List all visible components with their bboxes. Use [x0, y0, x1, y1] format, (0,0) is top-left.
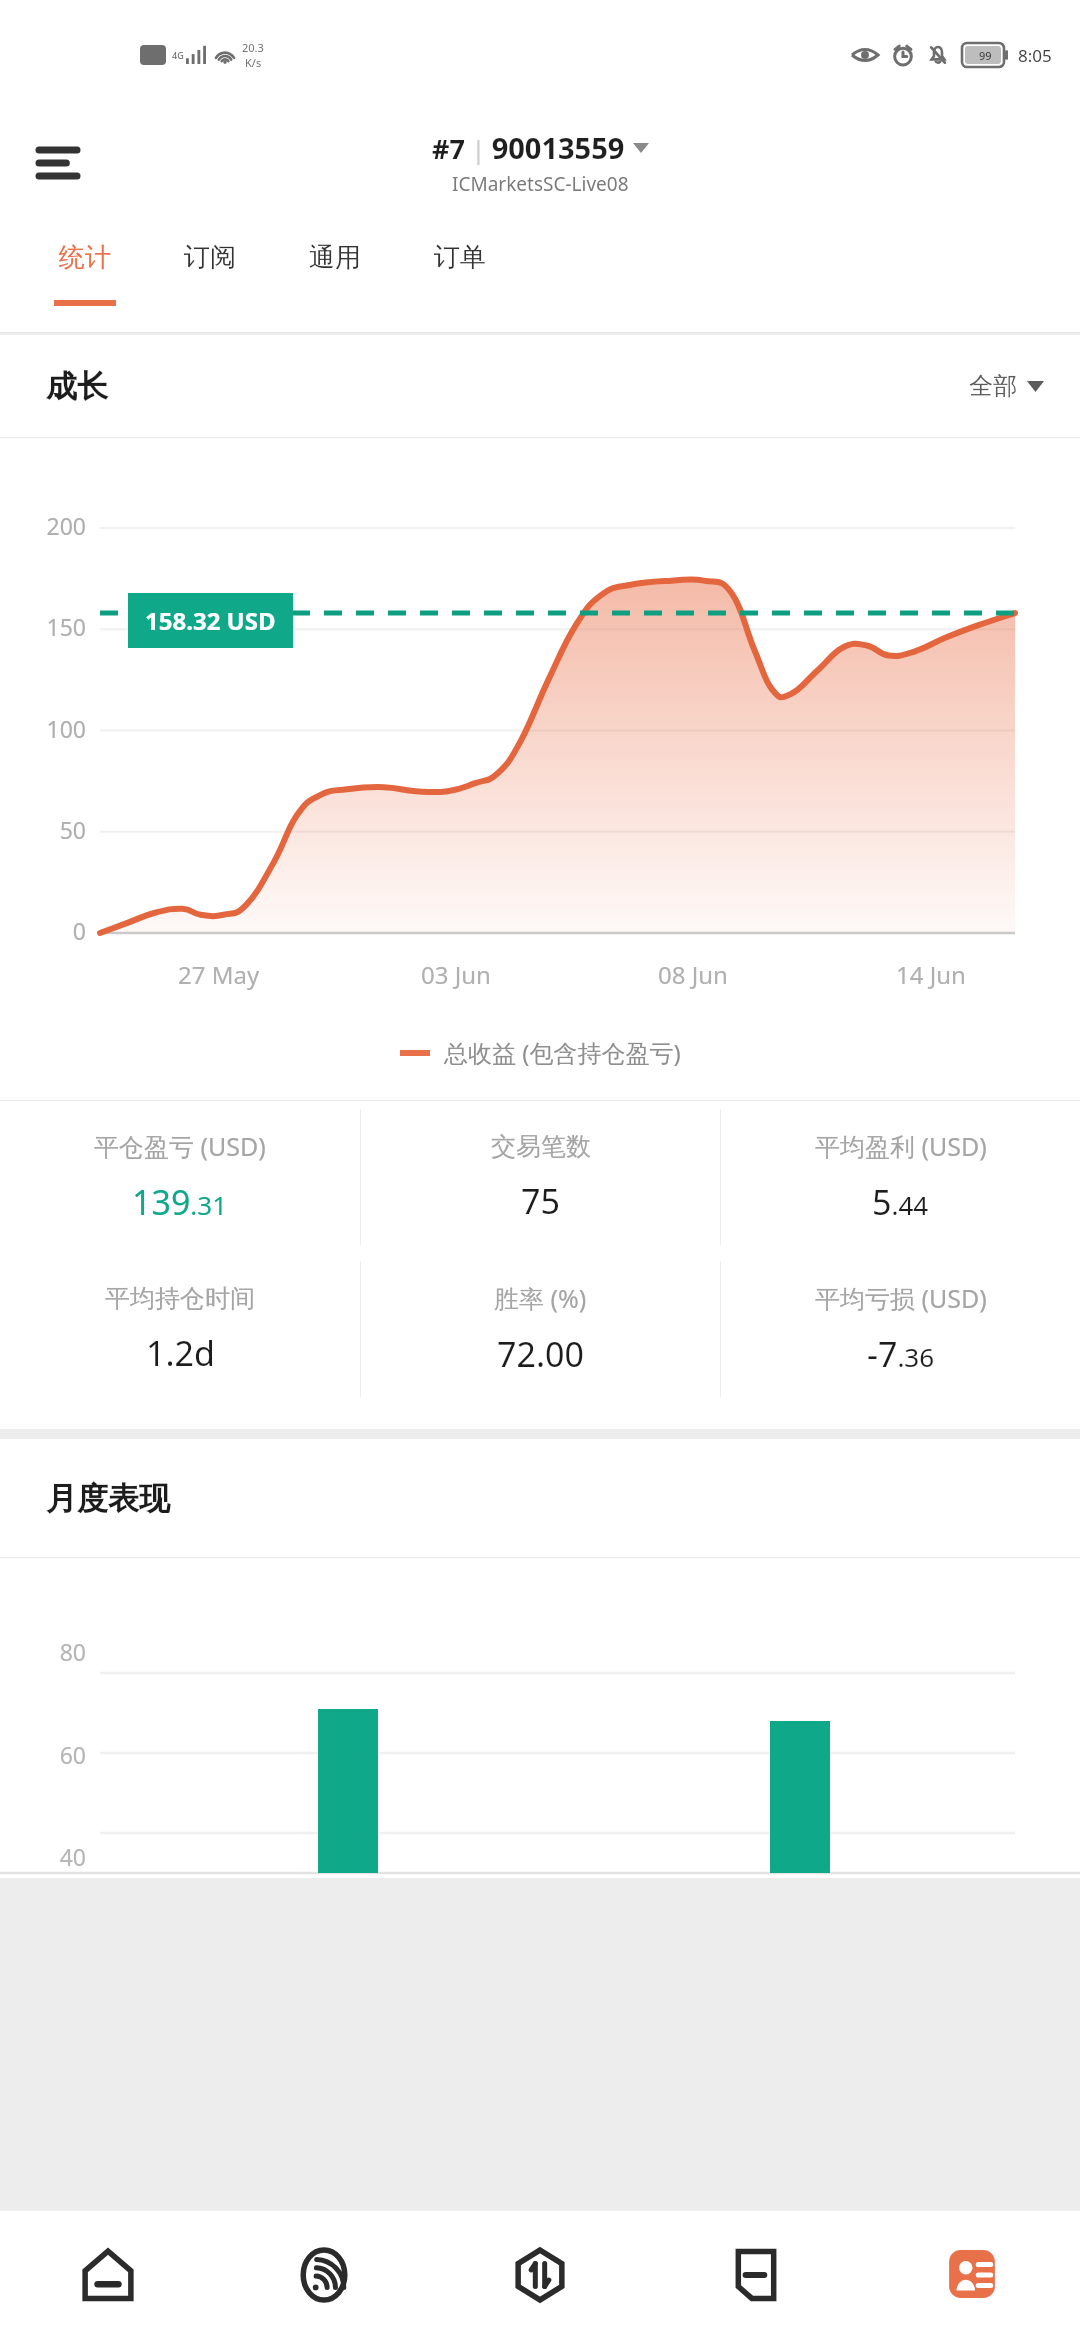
staticText: 158.32 USD: [145, 604, 276, 637]
staticText: 胜率 (%): [494, 1281, 587, 1315]
button[interactable]: 平仓盈亏 (USD): [0, 1101, 360, 1253]
staticText: 0: [0, 915, 86, 946]
staticText: 27 May: [178, 958, 260, 991]
staticText: 通用: [309, 241, 361, 274]
staticText: 全部: [969, 371, 1017, 401]
button[interactable]: Profile: [864, 2210, 1080, 2340]
staticText: 订阅: [184, 241, 236, 274]
staticText: -7.36: [867, 1331, 935, 1377]
staticText: 平均亏损 (USD): [815, 1281, 987, 1315]
staticText: 平均盈利 (USD): [815, 1129, 987, 1163]
button[interactable]: 订单: [397, 215, 522, 333]
staticText: 150: [0, 611, 86, 642]
button[interactable]: Menu: [30, 135, 86, 191]
staticText: K/s: [245, 55, 262, 70]
staticText: 交易笔数: [491, 1131, 591, 1162]
staticText: 1.2d: [146, 1330, 215, 1376]
button[interactable]: 平均持仓时间: [0, 1253, 360, 1405]
staticText: 75: [521, 1178, 560, 1224]
staticText: 成长: [46, 367, 108, 406]
button[interactable]: #7 | 90013559: [432, 128, 649, 197]
button[interactable]: Trade: [432, 2210, 648, 2340]
staticText: 月度表现: [46, 1479, 170, 1518]
staticText: 订单: [434, 241, 486, 274]
staticText: 20.3: [242, 40, 264, 55]
button[interactable]: 平均亏损 (USD): [721, 1253, 1080, 1405]
staticText: 72.00: [497, 1331, 584, 1377]
staticText: 50: [0, 814, 86, 845]
staticText: 139.31: [132, 1179, 228, 1225]
staticText: 统计: [59, 241, 111, 274]
staticText: 03 Jun: [421, 958, 491, 991]
staticText: 99: [979, 48, 992, 63]
staticText: 08 Jun: [658, 958, 728, 991]
button[interactable]: Home: [0, 2210, 216, 2340]
staticText: 40: [0, 1841, 86, 1872]
button[interactable]: 统计: [22, 215, 147, 333]
staticText: ICMarketsSC-Live08: [452, 171, 629, 197]
staticText: 80: [0, 1636, 86, 1667]
button[interactable]: 胜率 (%): [361, 1253, 720, 1405]
button[interactable]: 平均盈利 (USD): [721, 1101, 1080, 1253]
staticText: 总收益 (包含持仓盈亏): [444, 1036, 681, 1069]
staticText: 8:05: [1018, 44, 1052, 67]
button[interactable]: Signals: [216, 2210, 432, 2340]
button[interactable]: 交易笔数: [361, 1101, 720, 1253]
staticText: 100: [0, 713, 86, 744]
staticText: 平均持仓时间: [105, 1283, 255, 1314]
button[interactable]: 订阅: [147, 215, 272, 333]
staticText: #7 | 90013559: [432, 128, 625, 167]
staticText: 平仓盈亏 (USD): [94, 1129, 266, 1163]
button[interactable]: 通用: [272, 215, 397, 333]
button[interactable]: Messages: [648, 2210, 864, 2340]
staticText: 60: [0, 1739, 86, 1770]
staticText: 4G: [172, 49, 184, 61]
button[interactable]: 全部: [969, 371, 1044, 401]
staticText: 200: [0, 510, 86, 541]
staticText: 5.44: [872, 1179, 929, 1225]
staticText: 14 Jun: [896, 958, 966, 991]
